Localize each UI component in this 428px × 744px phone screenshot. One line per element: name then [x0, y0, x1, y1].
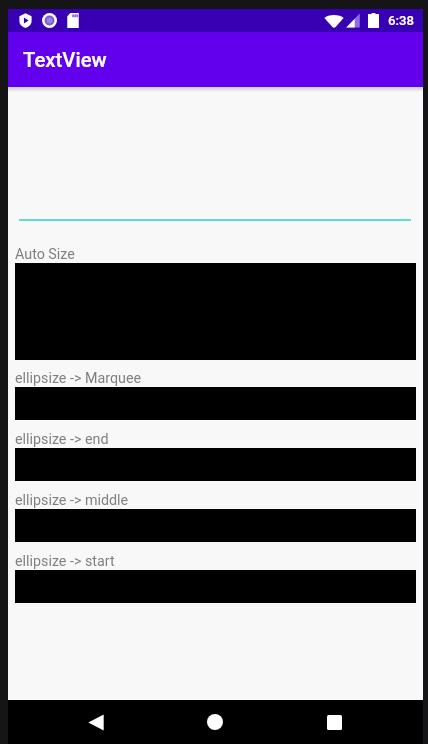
staticText: ellipsize -> start	[15, 553, 115, 570]
staticText: ellipsize -> end	[15, 431, 109, 448]
button[interactable]: Recents	[310, 700, 358, 744]
staticText: ellipsize -> Marquee	[15, 370, 142, 387]
staticText: 6:38	[388, 13, 414, 28]
staticText: ellipsize -> middle	[15, 492, 129, 509]
staticText: Auto Size	[15, 246, 75, 263]
button[interactable]: Back	[72, 700, 120, 744]
staticText: TextView	[23, 48, 107, 72]
button[interactable]: Home	[191, 700, 239, 744]
